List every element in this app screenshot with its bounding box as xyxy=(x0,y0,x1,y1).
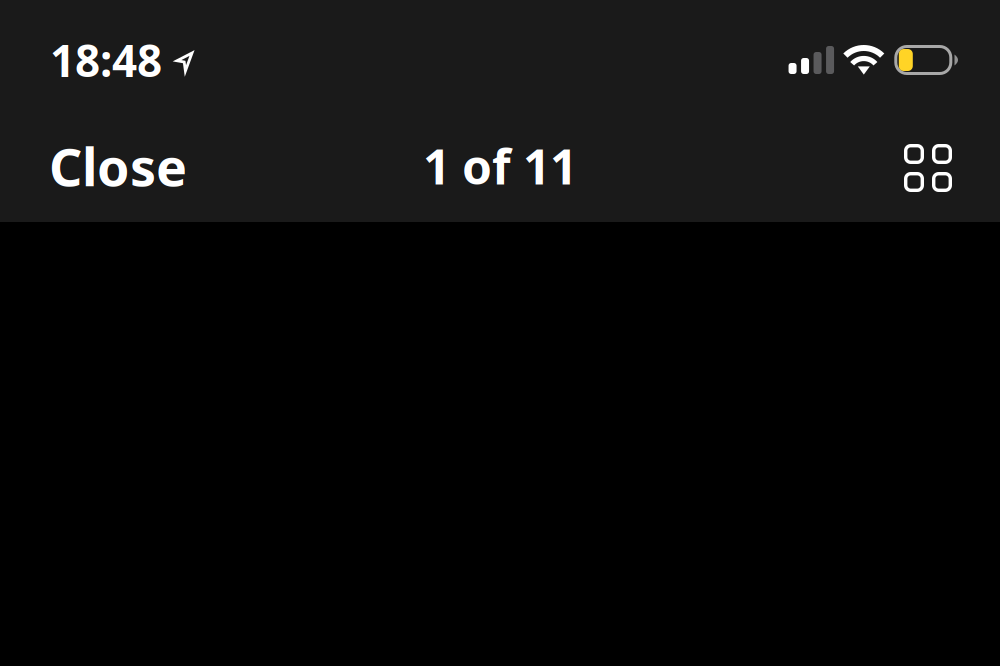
button[interactable]: Close xyxy=(39,119,197,213)
button[interactable]: Show thumbnail grid xyxy=(892,130,964,202)
staticText: 1 of 11 xyxy=(423,134,577,198)
staticText: 18:48 xyxy=(50,31,162,89)
staticText: Close xyxy=(49,131,187,201)
